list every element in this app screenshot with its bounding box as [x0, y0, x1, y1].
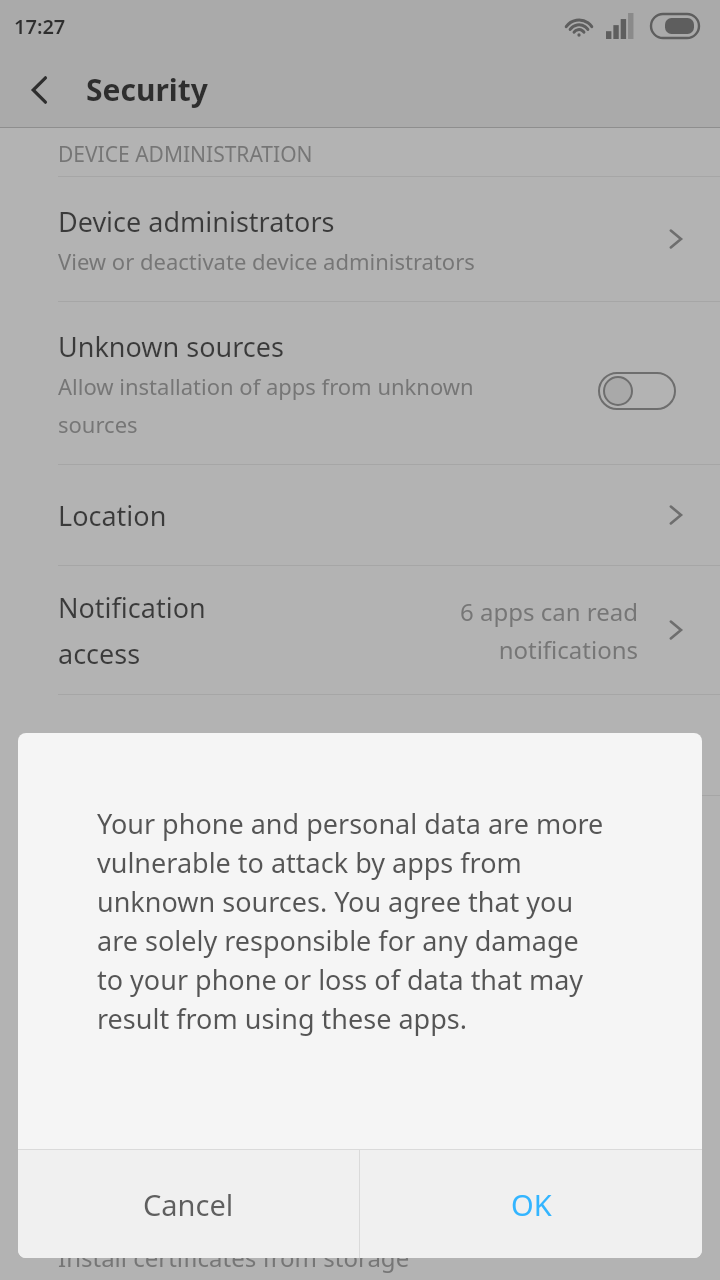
- staticText: View or deactivate device administrators: [58, 246, 475, 276]
- staticText: Allow installation of apps from unknown …: [58, 371, 528, 439]
- button[interactable]: Location: [0, 465, 720, 565]
- staticText: Install certificates from storage: [58, 1241, 410, 1274]
- button[interactable]: Cancel: [18, 1150, 359, 1258]
- staticText: Security: [86, 69, 208, 110]
- staticText: OK: [511, 1185, 552, 1224]
- button[interactable]: Back: [10, 60, 70, 120]
- button[interactable]: Unknown sources toggle: [598, 372, 676, 410]
- staticText: Unknown sources: [58, 328, 284, 365]
- button[interactable]: Device administrators: [0, 177, 720, 301]
- staticText: Notification access: [58, 589, 288, 672]
- staticText: 6 apps can read notifications: [408, 595, 638, 666]
- staticText: DEVICE ADMINISTRATION: [58, 140, 313, 169]
- staticText: Cancel: [143, 1185, 234, 1224]
- staticText: Device administrators: [58, 203, 335, 240]
- button[interactable]: OK: [360, 1150, 702, 1258]
- staticText: 17:27: [14, 13, 66, 40]
- staticText: Location: [58, 497, 167, 534]
- button[interactable]: Notification access: [0, 566, 720, 694]
- staticText: Your phone and personal data are more vu…: [97, 805, 607, 1037]
- button[interactable]: Unknown sources: [0, 302, 720, 464]
